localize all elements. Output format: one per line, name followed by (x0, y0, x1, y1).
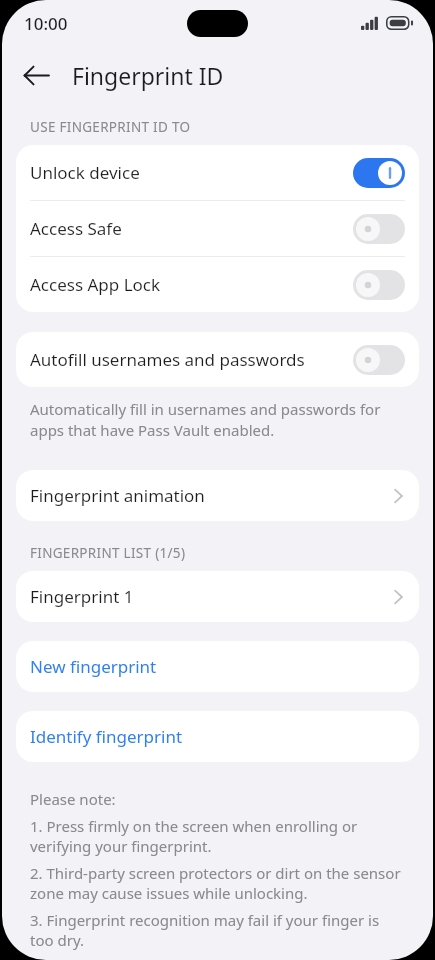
staticText: Unlock device (30, 161, 353, 184)
button[interactable]: Back (14, 53, 58, 97)
staticText: 3. Fingerprint recognition may fail if y… (30, 910, 405, 950)
staticText: Please note: (30, 789, 116, 809)
staticText: Automatically fill in usernames and pass… (30, 399, 405, 441)
staticText: Fingerprint animation (30, 484, 394, 507)
button[interactable]: Access App Lock (16, 257, 419, 312)
staticText: 10:00 (24, 12, 68, 35)
staticText: Fingerprint ID (72, 60, 224, 91)
button[interactable]: Fingerprint animation (16, 470, 419, 521)
button[interactable]: New fingerprint (16, 641, 419, 692)
staticText: USE FINGERPRINT ID TO (30, 118, 433, 136)
staticText: 2. Third-party screen protectors or dirt… (30, 863, 405, 903)
staticText: Autofill usernames and passwords (30, 348, 353, 371)
staticText: Fingerprint 1 (30, 585, 394, 608)
button[interactable]: Access Safe (16, 201, 419, 256)
staticText: FINGERPRINT LIST (1/5) (30, 544, 433, 562)
staticText: Identify fingerprint (30, 725, 183, 748)
staticText: New fingerprint (30, 655, 157, 678)
staticText: Access Safe (30, 217, 353, 240)
button[interactable]: Autofill usernames and passwords (16, 332, 419, 387)
button[interactable]: Unlock device (16, 145, 419, 200)
button[interactable]: Identify fingerprint (16, 711, 419, 762)
staticText: Access App Lock (30, 273, 353, 296)
button[interactable]: Fingerprint 1 (16, 571, 419, 622)
staticText: 1. Press firmly on the screen when enrol… (30, 816, 405, 856)
